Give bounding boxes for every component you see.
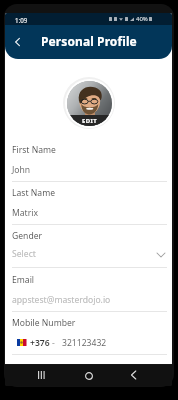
staticText: 40%: [136, 15, 148, 22]
staticText: 1:09: [15, 16, 28, 24]
staticText: 321123432: [62, 337, 107, 347]
button[interactable]: Last Name: [12, 187, 166, 201]
button[interactable]: Back: [119, 364, 147, 385]
staticText: EDIT: [82, 117, 98, 125]
button[interactable]: Email: [12, 274, 166, 288]
staticText: appstest@masterdojo.io: [12, 294, 111, 306]
button[interactable]: Mobile Number: [12, 317, 166, 331]
staticText: Gender: [12, 230, 43, 242]
button[interactable]: Recents: [27, 364, 55, 385]
button[interactable]: Gender: [12, 230, 166, 244]
button[interactable]: +376: [17, 337, 107, 347]
staticText: John: [12, 164, 31, 176]
button[interactable]: Gender select: [12, 246, 167, 261]
button[interactable]: Edit profile photo: [62, 76, 116, 130]
staticText: Mobile Number: [12, 317, 76, 329]
staticText: First Name: [12, 144, 56, 156]
button[interactable]: Back: [6, 25, 28, 59]
button[interactable]: Home: [75, 365, 103, 386]
staticText: Select: [12, 248, 36, 260]
staticText: Personal Profile: [41, 33, 137, 49]
button[interactable]: First Name: [12, 144, 166, 158]
staticText: Matrix: [12, 207, 39, 219]
staticText: +376: [30, 337, 50, 347]
staticText: Last Name: [12, 187, 56, 199]
staticText: Email: [12, 274, 35, 286]
staticText: -: [52, 337, 55, 347]
